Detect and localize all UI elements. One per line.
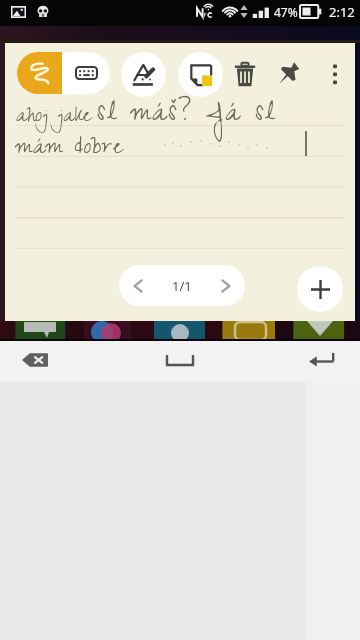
staticText: ahoj jake (16, 98, 92, 137)
button[interactable]: Pin (272, 56, 308, 92)
staticText: 47% (274, 4, 298, 20)
button[interactable]: Delete (227, 56, 263, 92)
button[interactable]: Keyboard mode (62, 52, 110, 94)
button[interactable]: Space (166, 355, 194, 366)
button[interactable]: Enter (309, 352, 335, 369)
staticText: 1/1 (172, 277, 192, 295)
button[interactable]: Select (178, 52, 223, 97)
button[interactable]: Convert handwriting to text (121, 52, 166, 97)
button[interactable]: Handwriting mode (17, 52, 62, 94)
button[interactable]: More options (317, 56, 353, 92)
staticText: 2:12 (329, 3, 355, 21)
button[interactable]: Add page (297, 266, 343, 312)
staticText: sl máš? (97, 90, 193, 142)
button[interactable]: Backspace (22, 353, 48, 367)
staticText: Já sl (206, 90, 276, 142)
staticText: mám dobre (16, 127, 124, 171)
button[interactable]: 1/1 (119, 265, 245, 306)
